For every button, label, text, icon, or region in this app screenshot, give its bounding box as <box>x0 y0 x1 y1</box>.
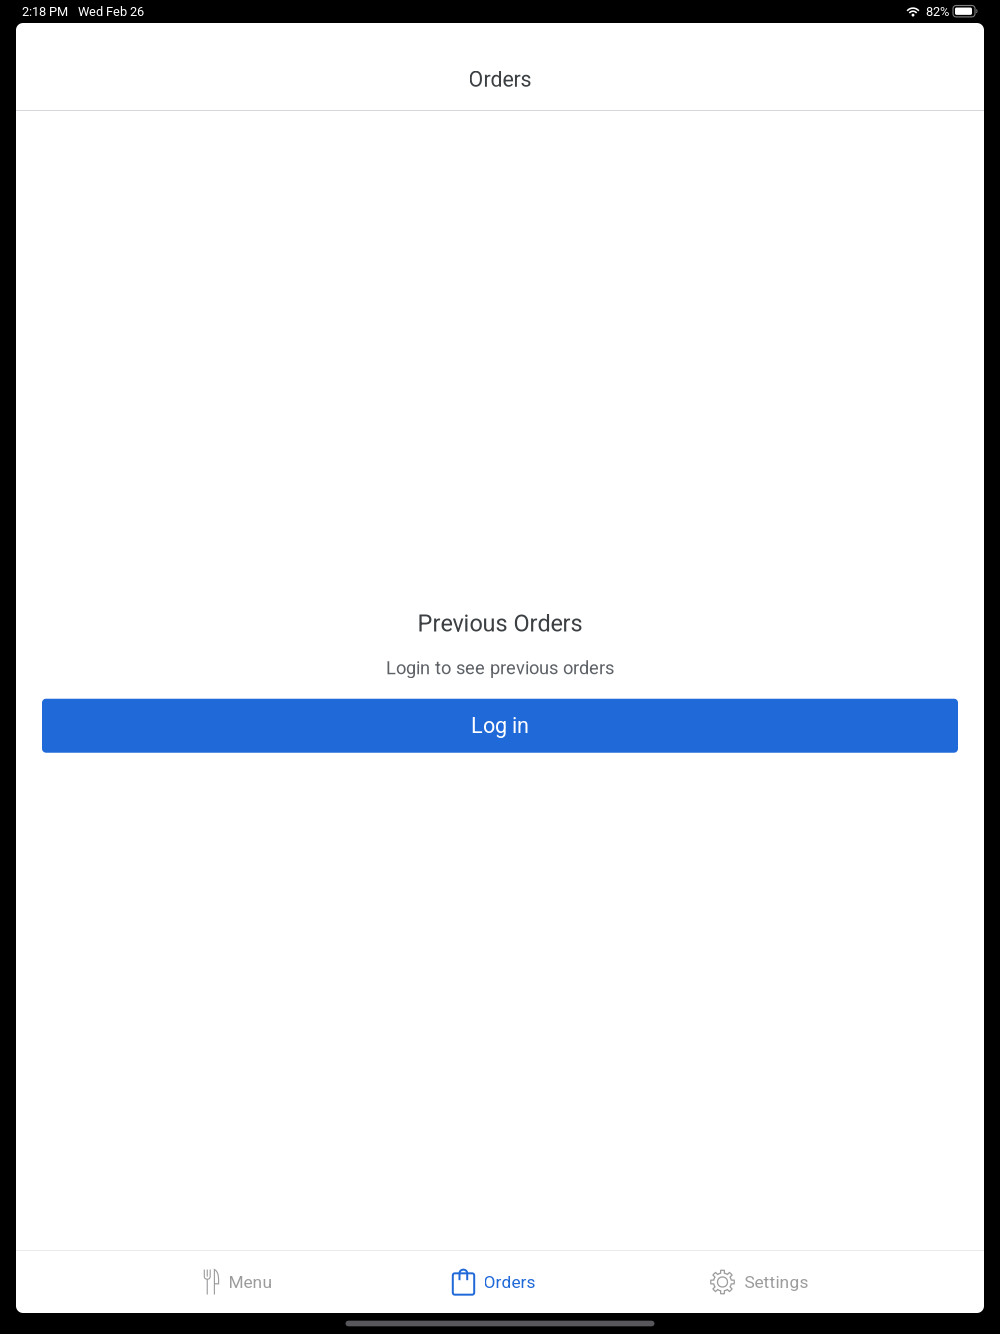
button[interactable]: Orders <box>440 1251 547 1313</box>
button[interactable]: Menu <box>191 1251 284 1313</box>
staticText: Previous Orders <box>417 610 582 637</box>
staticText: Settings <box>744 1272 808 1292</box>
staticText: Log in <box>471 713 529 738</box>
staticText: Orders <box>468 67 531 92</box>
staticText: 2:18 PM <box>22 4 68 19</box>
button[interactable]: Log in <box>42 699 958 753</box>
button[interactable]: Settings <box>697 1251 820 1313</box>
staticText: Wed Feb 26 <box>78 4 144 19</box>
staticText: Menu <box>228 1272 272 1292</box>
staticText: Orders <box>483 1272 535 1292</box>
staticText: Login to see previous orders <box>386 657 614 679</box>
staticText: 82% <box>926 4 949 19</box>
